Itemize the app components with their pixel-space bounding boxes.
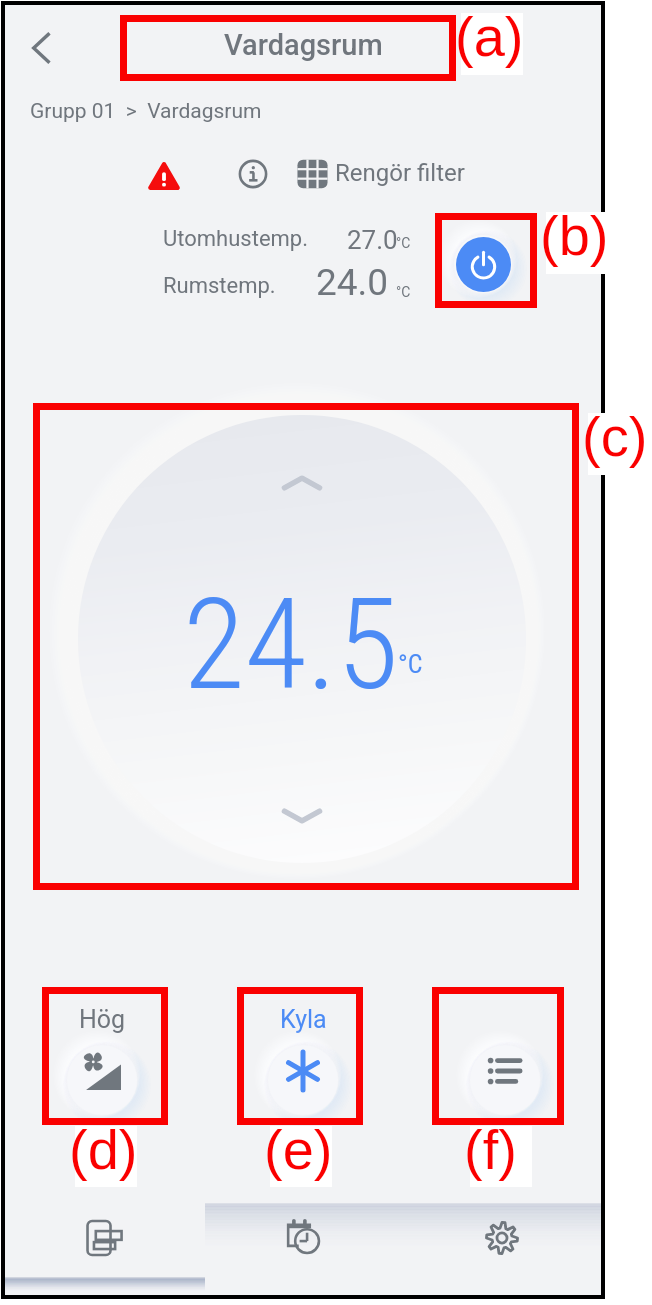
staticText: (a) — [455, 5, 524, 68]
staticText: 24.0 — [316, 261, 389, 304]
button[interactable]: Back — [16, 22, 68, 74]
staticText: (b) — [540, 204, 609, 267]
button[interactable]: Increase temperature — [282, 463, 322, 503]
staticText: (e) — [264, 1118, 333, 1181]
button[interactable]: Temperature dial — [53, 390, 551, 888]
staticText: (d) — [69, 1118, 138, 1181]
button[interactable]: Settings — [403, 1199, 601, 1277]
staticText: °C — [396, 284, 411, 300]
staticText: Rengör filter — [335, 159, 465, 187]
staticText: 27.0 — [347, 225, 398, 255]
button[interactable] — [450, 1005, 560, 1115]
staticText: Rumstemp. — [163, 273, 276, 299]
staticText: Kyla — [280, 1005, 327, 1034]
button[interactable]: Kyla — [248, 1005, 358, 1115]
staticText: °C — [396, 235, 411, 251]
staticText: Vardagsrum — [224, 28, 383, 62]
button[interactable]: Power — [456, 237, 511, 292]
button[interactable]: Hög — [47, 1005, 157, 1115]
staticText: (f) — [464, 1118, 517, 1181]
staticText: °C — [398, 649, 423, 679]
button[interactable]: Information — [238, 159, 268, 189]
staticText: Grupp 01 > Vardagsrum — [30, 99, 262, 124]
staticText: 24.5 — [183, 570, 399, 719]
staticText: (c) — [582, 405, 648, 468]
button[interactable]: Units — [5, 1199, 205, 1277]
staticText: Hög — [79, 1005, 126, 1034]
button[interactable]: Rengör filter — [297, 157, 465, 188]
button[interactable]: Schedule — [205, 1199, 403, 1277]
staticText: Utomhustemp. — [163, 226, 308, 252]
button[interactable]: Warning — [148, 160, 180, 192]
button[interactable]: Decrease temperature — [282, 796, 322, 836]
